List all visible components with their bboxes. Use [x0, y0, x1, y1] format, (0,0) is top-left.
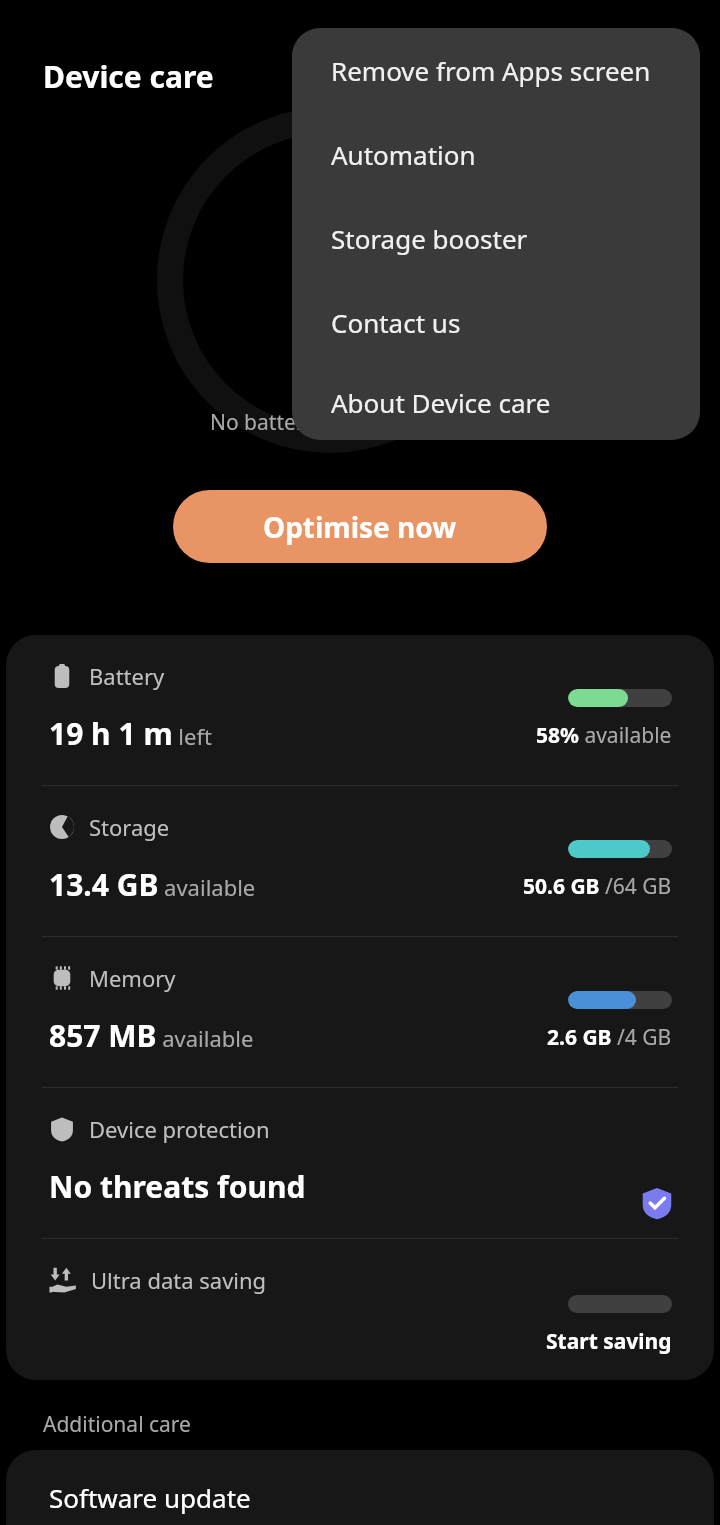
button[interactable]: Automation: [292, 112, 700, 196]
button[interactable]: Remove from Apps screen: [292, 28, 700, 112]
staticText: 50.6 GB /64 GB: [523, 872, 672, 901]
staticText: 857 MB available: [49, 1015, 254, 1056]
staticText: 58% available: [536, 721, 672, 750]
staticText: No battery usage data: [210, 408, 430, 437]
staticText: Storage booster: [331, 221, 528, 256]
button[interactable]: Ultra data saving: [6, 1239, 714, 1380]
button[interactable]: Storage booster: [292, 196, 700, 280]
staticText: Remove from Apps screen: [331, 53, 651, 88]
staticText: Software update: [49, 1480, 251, 1515]
staticText: Device protection: [89, 1114, 270, 1144]
button[interactable]: Storage: [6, 786, 714, 936]
staticText: Additional care: [43, 1410, 191, 1439]
staticText: 13.4 GB available: [49, 864, 256, 905]
staticText: Battery: [89, 661, 165, 691]
staticText: 2.6 GB /4 GB: [547, 1023, 672, 1052]
staticText: About Device care: [331, 385, 551, 420]
staticText: Automation: [331, 137, 476, 172]
staticText: Memory: [89, 963, 176, 993]
button[interactable]: Contact us: [292, 280, 700, 364]
button[interactable]: Optimise now: [173, 490, 547, 563]
staticText: Optimise now: [263, 508, 457, 546]
button[interactable]: Battery: [6, 635, 714, 785]
staticText: 19 h 1 m left: [49, 713, 212, 754]
staticText: Storage: [89, 812, 170, 842]
button[interactable]: Device protection: [6, 1088, 714, 1238]
staticText: Device care: [43, 56, 214, 97]
button[interactable]: Memory: [6, 937, 714, 1087]
staticText: Start saving: [546, 1327, 672, 1356]
button[interactable]: About Device care: [292, 364, 700, 440]
staticText: Ultra data saving: [91, 1265, 267, 1295]
staticText: No threats found: [49, 1166, 306, 1207]
button[interactable]: Software update: [6, 1450, 714, 1525]
staticText: Contact us: [331, 305, 461, 340]
